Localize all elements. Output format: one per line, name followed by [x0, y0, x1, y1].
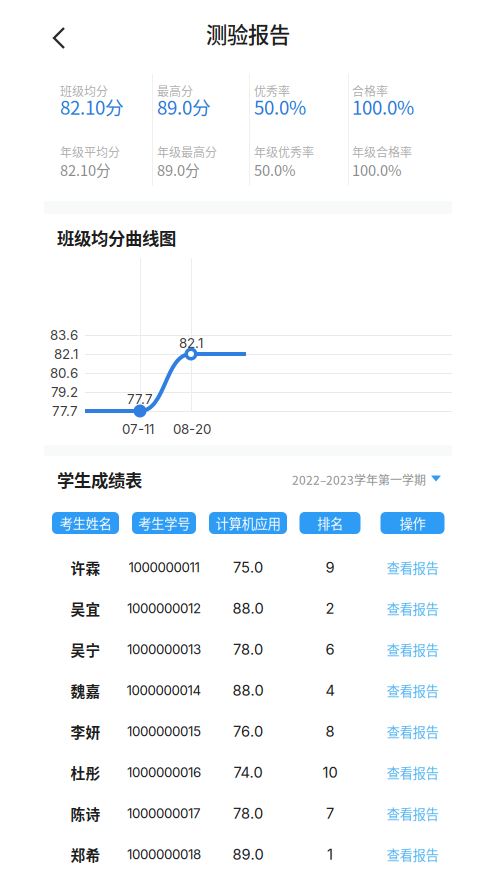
staticText: 计算机应用 — [215, 513, 280, 533]
staticText: 1000000018 — [127, 846, 201, 862]
staticText: 07-11 — [122, 421, 154, 437]
staticText: 吴宜 — [70, 598, 100, 619]
staticText: 学生成绩表 — [57, 467, 142, 492]
staticText: 年级优秀率 — [254, 143, 314, 160]
button[interactable]: 查看报告 — [371, 711, 454, 752]
staticText: 80.6 — [50, 365, 78, 381]
staticText: 08-20 — [173, 421, 211, 437]
staticText: 查看报告 — [386, 845, 438, 864]
staticText: 2 — [325, 600, 334, 617]
staticText: 77.7 — [127, 391, 153, 407]
staticText: 1000000015 — [127, 723, 201, 739]
staticText: 合格率 — [352, 82, 388, 99]
staticText: 年级平均分 — [60, 143, 120, 160]
staticText: 9 — [325, 559, 334, 576]
staticText: 2022–2023学年第一学期 — [292, 471, 426, 488]
staticText: 89.0 — [232, 846, 263, 863]
button[interactable]: Back — [44, 19, 84, 59]
staticText: 1000000011 — [128, 559, 199, 575]
staticText: 查看报告 — [386, 804, 438, 823]
staticText: 4 — [325, 682, 334, 699]
staticText: 查看报告 — [386, 640, 438, 659]
staticText: 考生学号 — [138, 513, 190, 533]
staticText: 1000000016 — [127, 764, 201, 780]
staticText: 查看报告 — [386, 722, 438, 741]
staticText: 82.10分 — [60, 159, 111, 180]
staticText: 10 — [322, 764, 337, 781]
staticText: 郑希 — [70, 844, 100, 865]
staticText: 83.6 — [50, 327, 78, 343]
button[interactable]: 查看报告 — [371, 670, 454, 711]
button[interactable]: 操作 — [380, 512, 444, 534]
staticText: 76.0 — [233, 723, 263, 740]
staticText: 班级均分 — [60, 82, 108, 99]
button[interactable]: 查看报告 — [371, 588, 454, 629]
staticText: 陈诗 — [70, 803, 100, 824]
staticText: 查看报告 — [386, 599, 438, 618]
staticText: 优秀率 — [254, 82, 290, 99]
staticText: 100.0% — [352, 93, 414, 120]
staticText: 查看报告 — [386, 558, 438, 577]
staticText: 测验报告 — [206, 18, 290, 49]
staticText: 排名 — [317, 513, 343, 533]
staticText: 查看报告 — [386, 681, 438, 700]
staticText: 年级合格率 — [352, 143, 412, 160]
button[interactable]: 查看报告 — [371, 629, 454, 670]
staticText: 1000000013 — [127, 641, 201, 657]
staticText: 8 — [325, 723, 334, 740]
staticText: 74.0 — [233, 764, 262, 781]
button[interactable]: 2022–2023学年第一学期 — [292, 471, 441, 488]
button[interactable]: 考生学号 — [132, 512, 196, 534]
staticText: 操作 — [399, 513, 425, 533]
staticText: 吴宁 — [70, 639, 100, 660]
button[interactable]: 查看报告 — [371, 793, 454, 834]
staticText: 最高分 — [157, 82, 193, 99]
staticText: 100.0% — [352, 159, 402, 180]
staticText: 班级均分曲线图 — [57, 225, 176, 250]
staticText: 79.2 — [51, 384, 78, 400]
staticText: 魏嘉 — [70, 680, 100, 701]
staticText: 82.1 — [54, 346, 78, 362]
staticText: 1000000012 — [127, 600, 201, 616]
button[interactable]: 查看报告 — [371, 752, 454, 793]
button[interactable]: 计算机应用 — [209, 512, 287, 534]
staticText: 77.7 — [52, 403, 78, 419]
button[interactable]: 查看报告 — [371, 547, 454, 588]
staticText: 78.0 — [233, 641, 263, 658]
staticText: 82.1 — [179, 335, 203, 351]
button[interactable]: 排名 — [299, 512, 360, 534]
staticText: 88.0 — [232, 600, 263, 617]
staticText: 78.0 — [233, 805, 263, 822]
staticText: 82.10分 — [60, 93, 124, 120]
staticText: 李妍 — [70, 721, 100, 742]
staticText: 50.0% — [254, 159, 296, 180]
staticText: 许霖 — [70, 557, 100, 578]
staticText: 89.0分 — [157, 93, 211, 120]
staticText: 89.0分 — [157, 159, 200, 180]
staticText: 年级最高分 — [157, 143, 217, 160]
staticText: 杜彤 — [70, 762, 100, 783]
staticText: 1000000017 — [127, 805, 201, 821]
staticText: 6 — [325, 641, 334, 658]
staticText: 7 — [326, 805, 334, 822]
staticText: 75.0 — [233, 559, 263, 576]
staticText: 1 — [327, 846, 333, 863]
staticText: 50.0% — [254, 93, 306, 120]
staticText: 考生姓名 — [59, 513, 111, 533]
staticText: 88.0 — [232, 682, 263, 699]
button[interactable]: 考生姓名 — [52, 512, 119, 534]
staticText: 1000000014 — [126, 682, 201, 698]
staticText: 查看报告 — [386, 763, 438, 782]
button[interactable]: 查看报告 — [371, 834, 454, 875]
